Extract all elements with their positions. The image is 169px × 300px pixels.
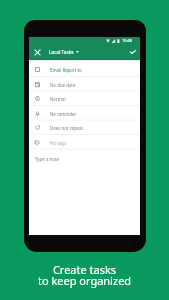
button[interactable]: Done xyxy=(125,44,140,60)
button[interactable]: No due date xyxy=(29,77,140,92)
staticText: No tags xyxy=(50,140,66,146)
button[interactable]: No tags xyxy=(29,135,140,150)
button[interactable]: Close xyxy=(29,44,46,60)
button[interactable]: Type a note xyxy=(35,156,59,162)
staticText: Email Report to xyxy=(50,67,82,73)
button[interactable]: No reminder xyxy=(29,106,140,121)
button[interactable]: Local Tasks xyxy=(46,44,82,60)
button[interactable]: Does not repeat xyxy=(29,120,140,135)
button[interactable]: Email Report to xyxy=(29,62,140,77)
staticText: No due date xyxy=(50,82,76,88)
staticText: Normal xyxy=(50,96,66,102)
staticText: Local Tasks xyxy=(49,49,74,55)
staticText: Type a note xyxy=(35,156,59,162)
staticText: Does not repeat xyxy=(50,125,84,131)
staticText: 10:48 xyxy=(122,38,132,43)
staticText: Create tasks to keep organized xyxy=(0,262,169,288)
staticText: No reminder xyxy=(50,111,77,117)
button[interactable]: Normal xyxy=(29,91,140,106)
